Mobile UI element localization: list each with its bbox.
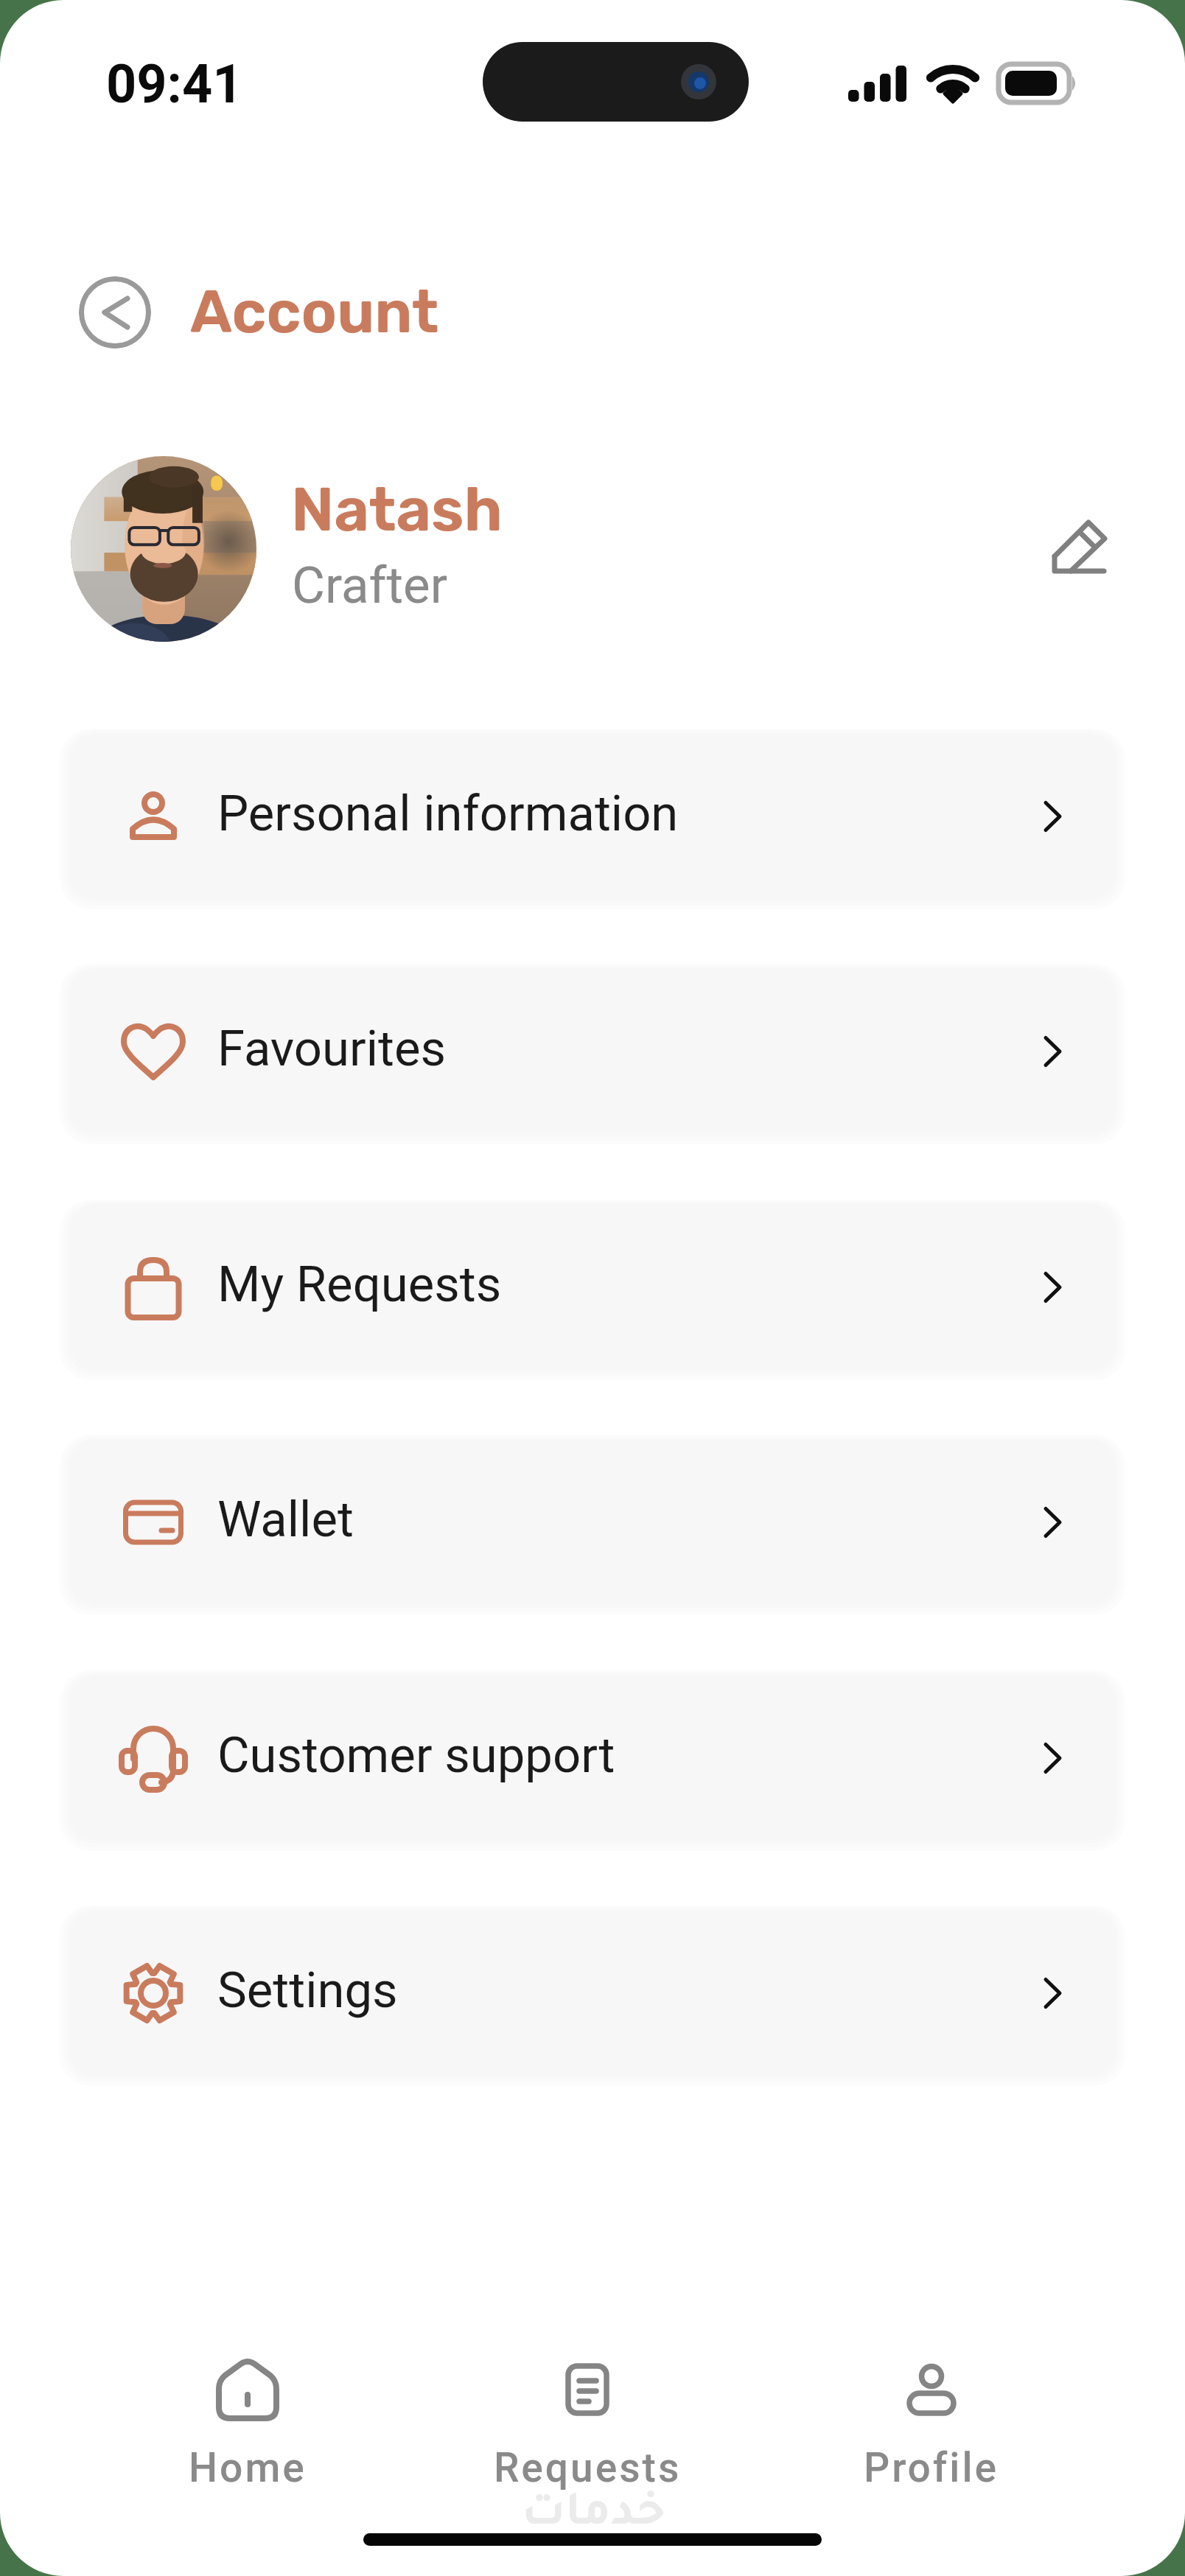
staticText: خدمات: [522, 2493, 665, 2541]
button[interactable]: Home: [137, 2343, 358, 2502]
button[interactable]: Personal information: [70, 734, 1115, 899]
staticText: Favourites: [217, 1020, 447, 1078]
staticText: Settings: [217, 1961, 398, 2020]
button[interactable]: Favourites: [70, 969, 1115, 1134]
button[interactable]: My Requests: [70, 1205, 1115, 1370]
staticText: Profile: [864, 2444, 999, 2491]
button[interactable]: Back: [79, 276, 151, 349]
staticText: Home: [189, 2444, 307, 2491]
staticText: 09:41: [106, 53, 243, 115]
staticText: My Requests: [217, 1256, 502, 1314]
staticText: Wallet: [217, 1491, 354, 1549]
button[interactable]: Settings: [70, 1911, 1115, 2076]
button[interactable]: Edit profile: [1046, 514, 1114, 581]
staticText: Customer support: [217, 1726, 615, 1785]
button[interactable]: Customer support: [70, 1676, 1115, 1841]
staticText: Natash: [291, 474, 503, 545]
button[interactable]: Requests: [477, 2343, 698, 2502]
staticText: Account: [190, 276, 439, 347]
button[interactable]: Profile: [821, 2343, 1042, 2502]
button[interactable]: Wallet: [70, 1440, 1115, 1605]
staticText: Crafter: [292, 556, 448, 615]
staticText: Requests: [494, 2444, 682, 2491]
staticText: Personal information: [217, 785, 679, 843]
